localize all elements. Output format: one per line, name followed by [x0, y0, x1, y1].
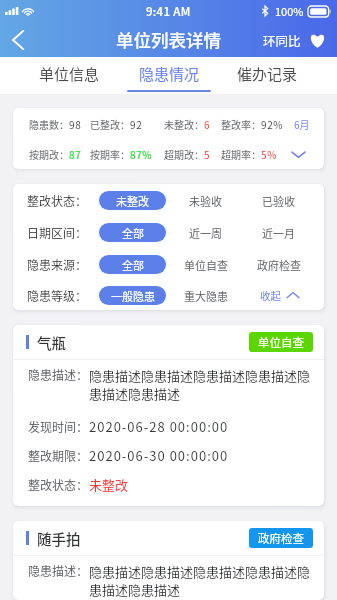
- staticText: 未整改：: [164, 117, 204, 131]
- button[interactable]: 单位自查: [249, 332, 313, 352]
- staticText: 隐患描述：: [28, 366, 89, 383]
- staticText: 92: [130, 117, 143, 131]
- staticText: 一般隐患: [111, 288, 155, 304]
- button[interactable]: 重大隐患: [172, 286, 239, 305]
- button[interactable]: Back: [6, 22, 30, 57]
- staticText: 2020-06-30 00:00:00: [89, 446, 229, 465]
- staticText: 气瓶: [37, 332, 66, 353]
- button[interactable]: 环同比: [263, 27, 326, 53]
- staticText: 政府检查: [258, 530, 304, 547]
- staticText: 单位列表详情: [116, 27, 221, 52]
- staticText: 单位信息: [39, 63, 100, 85]
- staticText: 整改期限：: [28, 447, 89, 464]
- staticText: 按期改：: [29, 147, 69, 161]
- staticText: 隐患等级：: [27, 287, 88, 304]
- staticText: 政府检查: [257, 257, 301, 273]
- button[interactable]: 近一月: [245, 223, 312, 242]
- staticText: 发现时间：: [28, 418, 89, 435]
- button[interactable]: 单位自查: [172, 255, 239, 274]
- staticText: 5%: [261, 147, 277, 161]
- button[interactable]: 收起: [258, 280, 301, 310]
- staticText: 未验收: [189, 193, 222, 209]
- button[interactable]: 一般隐患: [99, 286, 166, 305]
- button[interactable]: 全部: [99, 255, 166, 274]
- staticText: 催办记录: [237, 63, 298, 85]
- staticText: 87: [69, 147, 82, 161]
- staticText: 整改状态：: [28, 476, 89, 493]
- staticText: 隐患来源：: [27, 256, 88, 273]
- button[interactable]: 已验收: [245, 191, 312, 210]
- staticText: 近一月: [262, 225, 295, 241]
- staticText: 92%: [261, 117, 284, 131]
- staticText: 未整改: [116, 193, 149, 209]
- staticText: 日期区间：: [27, 224, 88, 241]
- staticText: 重大隐患: [184, 288, 228, 304]
- staticText: 9:41 AM: [146, 3, 191, 20]
- staticText: 隐患描述：: [28, 562, 89, 579]
- staticText: 超期改：: [164, 147, 204, 161]
- staticText: 单位自查: [258, 334, 304, 351]
- staticText: 6: [204, 117, 211, 131]
- staticText: 100%: [275, 3, 304, 19]
- button[interactable]: 近一周: [172, 223, 239, 242]
- staticText: 隐患描述隐患描述隐患描述隐患描述隐患描述隐患描述: [89, 366, 312, 403]
- staticText: 全部: [122, 257, 144, 273]
- staticText: 单位自查: [184, 257, 228, 273]
- staticText: 整改状态：: [27, 192, 88, 209]
- staticText: 按期率：: [90, 147, 130, 161]
- staticText: 隐患情况: [139, 63, 200, 85]
- staticText: 收起: [260, 288, 281, 303]
- staticText: 近一周: [189, 225, 222, 241]
- staticText: 5: [204, 147, 211, 161]
- button[interactable]: 6月: [290, 116, 314, 132]
- button[interactable]: 单位信息: [39, 57, 100, 94]
- staticText: 98: [69, 117, 82, 131]
- button[interactable]: 催办记录: [237, 57, 298, 94]
- staticText: 全部: [122, 225, 144, 241]
- button[interactable]: 全部: [99, 223, 166, 242]
- staticText: 随手拍: [37, 528, 81, 549]
- staticText: 已整改：: [90, 117, 130, 131]
- staticText: 隐患描述隐患描述隐患描述隐患描述隐患描述隐患描述: [89, 562, 312, 599]
- button[interactable]: 政府检查: [249, 528, 313, 548]
- button[interactable]: 随手拍: [13, 521, 324, 600]
- staticText: 整改率：: [221, 117, 261, 131]
- button[interactable]: 未整改: [99, 191, 166, 210]
- button[interactable]: 政府检查: [245, 255, 312, 274]
- button[interactable]: Expand: [285, 146, 311, 162]
- button[interactable]: 隐患情况: [127, 57, 211, 94]
- staticText: 超期率：: [221, 147, 261, 161]
- staticText: 6月: [294, 117, 310, 131]
- staticText: 未整改: [89, 475, 129, 494]
- staticText: 隐患数：: [29, 117, 69, 131]
- staticText: 2020-06-28 00:00:00: [89, 417, 229, 436]
- button[interactable]: 气瓶: [13, 325, 324, 506]
- staticText: 环同比: [263, 31, 301, 49]
- staticText: 87%: [130, 147, 153, 161]
- staticText: 已验收: [262, 193, 295, 209]
- button[interactable]: 未验收: [172, 191, 239, 210]
